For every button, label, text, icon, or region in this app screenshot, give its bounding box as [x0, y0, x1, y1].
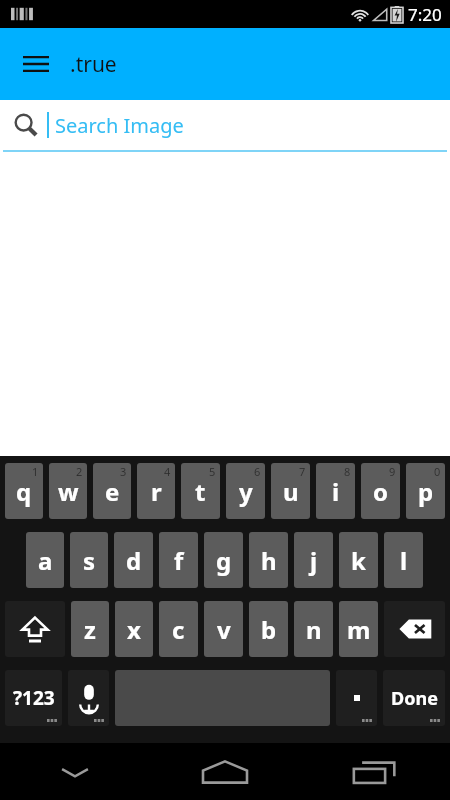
- staticText: v: [217, 613, 231, 646]
- button[interactable]: l: [384, 532, 423, 588]
- staticText: m: [347, 613, 371, 646]
- staticText: 6: [254, 464, 261, 479]
- button[interactable]: g: [204, 532, 243, 588]
- staticText: u: [283, 475, 299, 508]
- button[interactable]: v: [204, 601, 243, 657]
- button[interactable]: n: [294, 601, 333, 657]
- staticText: j: [310, 544, 318, 577]
- staticText: 4: [164, 464, 171, 479]
- button[interactable]: Recent apps: [300, 743, 450, 800]
- staticText: d: [126, 544, 142, 577]
- staticText: ?123: [13, 685, 55, 711]
- staticText: z: [84, 613, 96, 646]
- button[interactable]: k: [339, 532, 378, 588]
- button[interactable]: Voice input: [68, 670, 109, 726]
- staticText: x: [127, 613, 141, 646]
- button[interactable]: q: [5, 463, 43, 519]
- button[interactable]: c: [159, 601, 198, 657]
- button[interactable]: y: [226, 463, 265, 519]
- button[interactable]: d: [114, 532, 153, 588]
- button[interactable]: Search Image: [0, 100, 450, 150]
- button[interactable]: a: [26, 532, 64, 588]
- staticText: 1: [32, 464, 39, 479]
- staticText: .true: [70, 50, 117, 79]
- button[interactable]: Shift: [5, 601, 65, 657]
- button[interactable]: s: [70, 532, 108, 588]
- button[interactable]: w: [49, 463, 87, 519]
- button[interactable]: u: [271, 463, 310, 519]
- staticText: n: [306, 613, 322, 646]
- button[interactable]: m: [339, 601, 378, 657]
- staticText: f: [174, 544, 184, 577]
- button[interactable]: z: [71, 601, 109, 657]
- staticText: i: [332, 475, 340, 508]
- button[interactable]: i: [316, 463, 355, 519]
- button[interactable]: x: [115, 601, 153, 657]
- button[interactable]: f: [159, 532, 198, 588]
- staticText: 7:20: [408, 3, 442, 26]
- staticText: 5: [209, 464, 216, 479]
- staticText: r: [151, 475, 162, 508]
- staticText: t: [195, 475, 206, 508]
- staticText: 8: [344, 464, 351, 479]
- button[interactable]: Hide keyboard: [0, 743, 150, 800]
- staticText: o: [373, 475, 388, 508]
- staticText: w: [58, 475, 79, 508]
- button[interactable]: Home: [150, 743, 300, 800]
- staticText: k: [351, 544, 366, 577]
- button[interactable]: b: [249, 601, 288, 657]
- staticText: 9: [389, 464, 396, 479]
- button[interactable]: o: [361, 463, 400, 519]
- button[interactable]: Done: [383, 670, 445, 726]
- staticText: 7: [299, 464, 306, 479]
- staticText: g: [216, 544, 232, 577]
- staticText: 2: [76, 464, 83, 479]
- staticText: p: [418, 475, 434, 508]
- staticText: q: [16, 475, 32, 508]
- staticText: y: [239, 475, 253, 508]
- button[interactable]: p: [406, 463, 445, 519]
- staticText: c: [172, 613, 185, 646]
- button[interactable]: r: [137, 463, 175, 519]
- button[interactable]: Open navigation menu: [14, 42, 58, 86]
- staticText: l: [400, 544, 408, 577]
- button[interactable]: h: [249, 532, 288, 588]
- staticText: Search Image: [55, 112, 184, 139]
- staticText: s: [83, 544, 96, 577]
- button[interactable]: Backspace: [384, 601, 445, 657]
- staticText: e: [105, 475, 120, 508]
- button[interactable]: j: [294, 532, 333, 588]
- staticText: Done: [391, 686, 438, 711]
- staticText: 0: [434, 464, 441, 479]
- staticText: b: [261, 613, 277, 646]
- button[interactable]: [336, 670, 377, 726]
- button[interactable]: ?123: [5, 670, 62, 726]
- button[interactable]: e: [93, 463, 131, 519]
- staticText: h: [261, 544, 277, 577]
- button[interactable]: t: [181, 463, 220, 519]
- staticText: a: [38, 544, 53, 577]
- staticText: 3: [120, 464, 127, 479]
